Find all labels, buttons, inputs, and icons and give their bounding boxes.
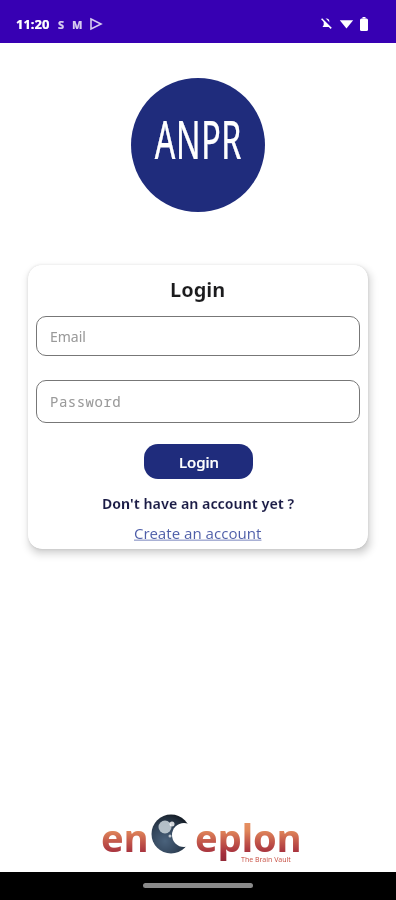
button[interactable]: Login (144, 444, 253, 479)
staticText: Login (170, 276, 226, 303)
staticText: The Brain Vault (241, 855, 291, 865)
staticText: ANPR (155, 103, 242, 174)
staticText: Don't have an account yet ? (102, 494, 295, 513)
staticText: Password (50, 392, 122, 411)
staticText: S (58, 17, 65, 32)
staticText: M (72, 17, 83, 32)
staticText: en (101, 811, 149, 863)
staticText: Email (50, 327, 86, 346)
staticText: 11:20 (16, 15, 50, 33)
button[interactable]: Create an account (134, 523, 262, 543)
button[interactable]: Password (36, 380, 360, 423)
staticText: Login (179, 452, 219, 472)
staticText: eplon (195, 811, 302, 863)
button[interactable] (131, 78, 265, 212)
button[interactable]: Email (36, 316, 360, 356)
